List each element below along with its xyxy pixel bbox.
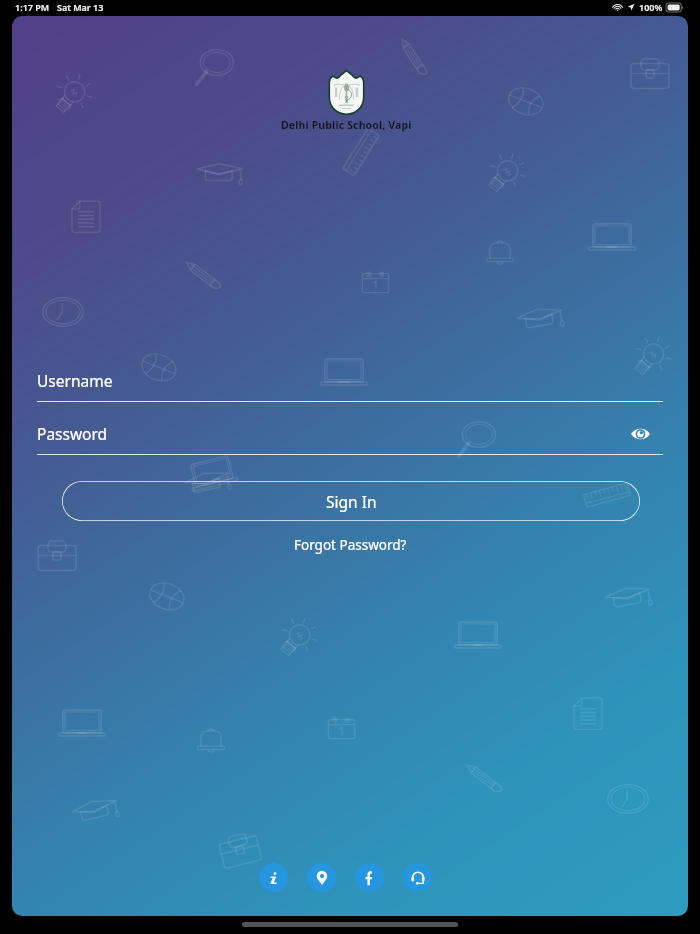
staticText: 1:17 PM [15,1,50,13]
staticText: Forgot Password? [294,536,407,554]
staticText: Delhi Public School, Vapi [281,118,412,132]
button[interactable]: Support [403,863,432,892]
staticText: Sat Mar 13 [57,1,104,13]
button[interactable]: Password [37,419,663,455]
button[interactable]: Username [37,366,663,402]
button[interactable]: Location [307,863,336,892]
button[interactable]: Facebook [355,863,384,892]
button[interactable]: Show password [626,420,654,448]
button[interactable]: Sign In [62,481,640,521]
staticText: 100% [639,1,663,13]
staticText: Sign In [326,491,377,512]
button[interactable]: Information [259,863,288,892]
staticText: Username [37,370,113,391]
button[interactable]: Forgot Password? [284,532,417,558]
staticText: Password [37,423,108,444]
